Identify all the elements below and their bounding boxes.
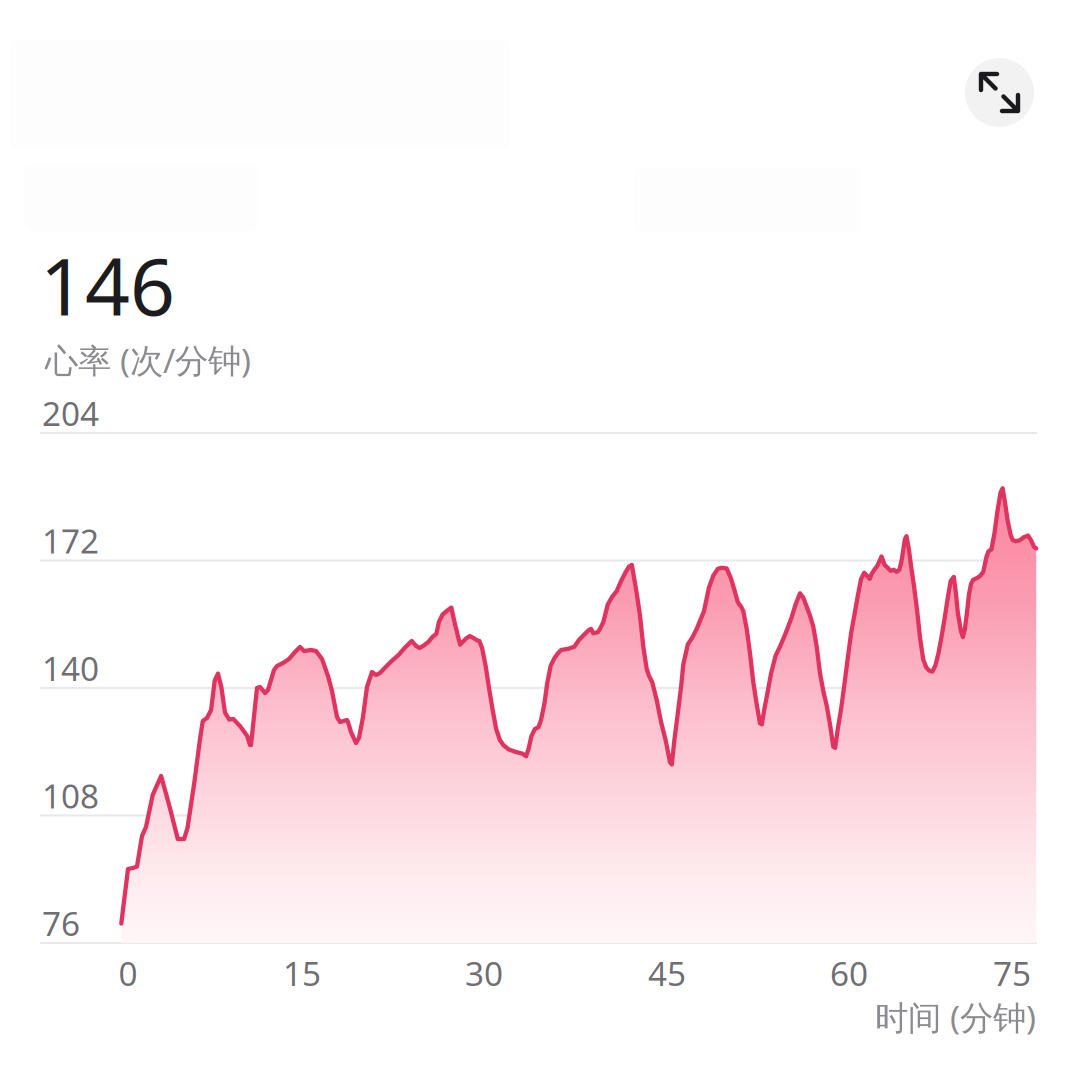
staticText: 时间 (分钟): [875, 995, 1036, 1039]
staticText: 172: [42, 518, 99, 563]
staticText: 146: [40, 233, 175, 337]
button[interactable]: Expand chart: [965, 58, 1034, 127]
staticText: 0: [118, 951, 137, 995]
staticText: 108: [42, 773, 99, 818]
staticText: 75: [993, 951, 1031, 995]
staticText: 45: [648, 951, 686, 995]
staticText: 140: [42, 646, 99, 690]
staticText: 15: [283, 951, 321, 995]
staticText: 60: [830, 951, 868, 995]
staticText: 76: [42, 901, 80, 945]
staticText: 心率 (次/分钟): [45, 338, 251, 382]
staticText: 30: [465, 951, 503, 995]
staticText: 204: [42, 391, 99, 435]
